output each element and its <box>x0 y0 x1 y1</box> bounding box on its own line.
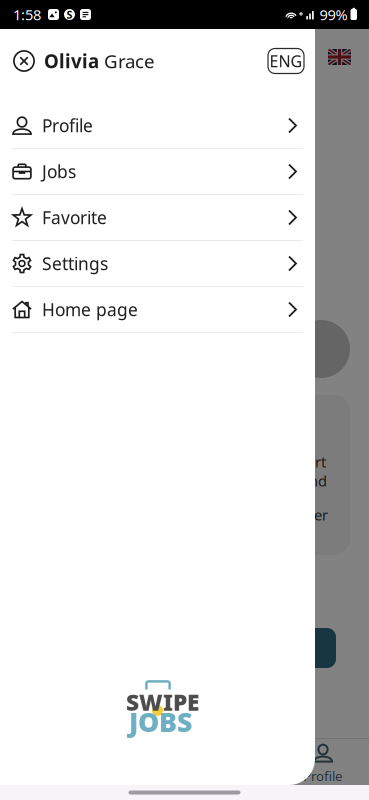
staticText: Your next shift start <box>191 452 326 471</box>
staticText: 99% <box>319 5 347 24</box>
staticText: Profile <box>303 767 343 785</box>
staticText: Home page <box>42 298 138 321</box>
staticText: Grace <box>99 49 155 73</box>
button[interactable]: Profile <box>0 103 315 149</box>
staticText: Favorite <box>42 206 107 229</box>
staticText: Profile <box>42 114 93 137</box>
staticText: S <box>66 7 72 22</box>
staticText: JOBS <box>129 704 192 739</box>
button[interactable]: Close menu <box>12 49 36 73</box>
button[interactable]: ENG <box>268 48 304 73</box>
button[interactable]: Settings <box>0 241 315 287</box>
staticText: SWIPE <box>126 687 199 717</box>
button[interactable]: Favorite <box>0 195 315 241</box>
staticText: Olivia <box>44 49 99 73</box>
staticText: ends at 17:00, remember <box>157 505 328 524</box>
staticText: Settings <box>42 252 108 275</box>
staticText: ENG <box>269 50 302 72</box>
staticText: tomorrow at 8:00 and <box>178 471 327 490</box>
button[interactable]: Home page <box>0 287 315 333</box>
staticText: Jobs <box>42 160 76 183</box>
button[interactable]: Jobs <box>0 149 315 195</box>
staticText: 1:58 <box>13 5 41 24</box>
